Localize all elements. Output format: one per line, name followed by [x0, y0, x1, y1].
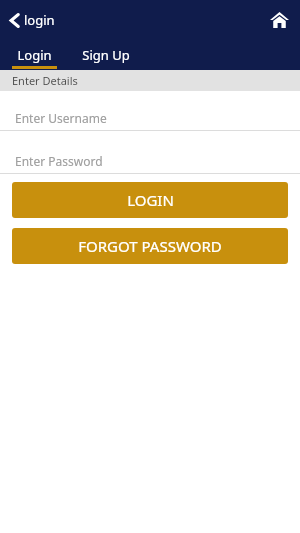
button[interactable]: LOGIN	[12, 182, 288, 218]
button[interactable]: Enter Password	[0, 148, 300, 174]
staticText: Enter Details	[12, 73, 78, 88]
staticText: FORGOT PASSWORD	[78, 236, 222, 256]
button[interactable]: Enter Username	[0, 105, 300, 131]
button[interactable]: Sign Up	[68, 40, 144, 70]
staticText: Login	[17, 46, 52, 64]
button[interactable]: Home	[264, 5, 294, 35]
button[interactable]: Login	[0, 40, 68, 70]
button[interactable]: FORGOT PASSWORD	[12, 228, 288, 264]
staticText: Sign Up	[82, 46, 130, 64]
staticText: login	[24, 11, 55, 29]
button[interactable]: login	[0, 7, 65, 33]
staticText: Enter Username	[15, 110, 107, 126]
staticText: Enter Password	[15, 153, 103, 169]
staticText: LOGIN	[127, 190, 174, 210]
